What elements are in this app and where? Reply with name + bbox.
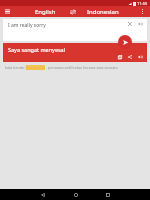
button[interactable]: Recents: [103, 190, 112, 199]
staticText: kata benda: penyesalan - perasaan sedih …: [5, 65, 118, 70]
staticText: English: [35, 8, 56, 16]
staticText: Indonesian: [87, 8, 119, 16]
staticText: I am really sorry: [8, 22, 46, 29]
button[interactable]: Menu: [3, 7, 12, 16]
button[interactable]: Clear: [127, 21, 133, 27]
button[interactable]: I am really sorry: [3, 19, 147, 41]
button[interactable]: Translate: [118, 35, 132, 49]
button[interactable]: Indonesian: [79, 8, 127, 16]
staticText: Saya sangat menyesal: [8, 46, 66, 53]
button[interactable]: Listen: [137, 21, 143, 27]
button[interactable]: Listen: [137, 54, 143, 60]
staticText: 11:55: [137, 1, 148, 6]
button[interactable]: Back: [38, 190, 47, 199]
button[interactable]: English: [23, 8, 67, 16]
button[interactable]: Home: [71, 190, 80, 199]
button[interactable]: Saya sangat menyesal: [3, 43, 147, 62]
button[interactable]: Copy: [117, 54, 123, 60]
button[interactable]: kata benda: penyesalan - perasaan sedih …: [5, 65, 145, 70]
button[interactable]: Swap languages: [67, 6, 79, 17]
button[interactable]: More options: [138, 7, 147, 16]
button[interactable]: Share: [127, 54, 133, 60]
